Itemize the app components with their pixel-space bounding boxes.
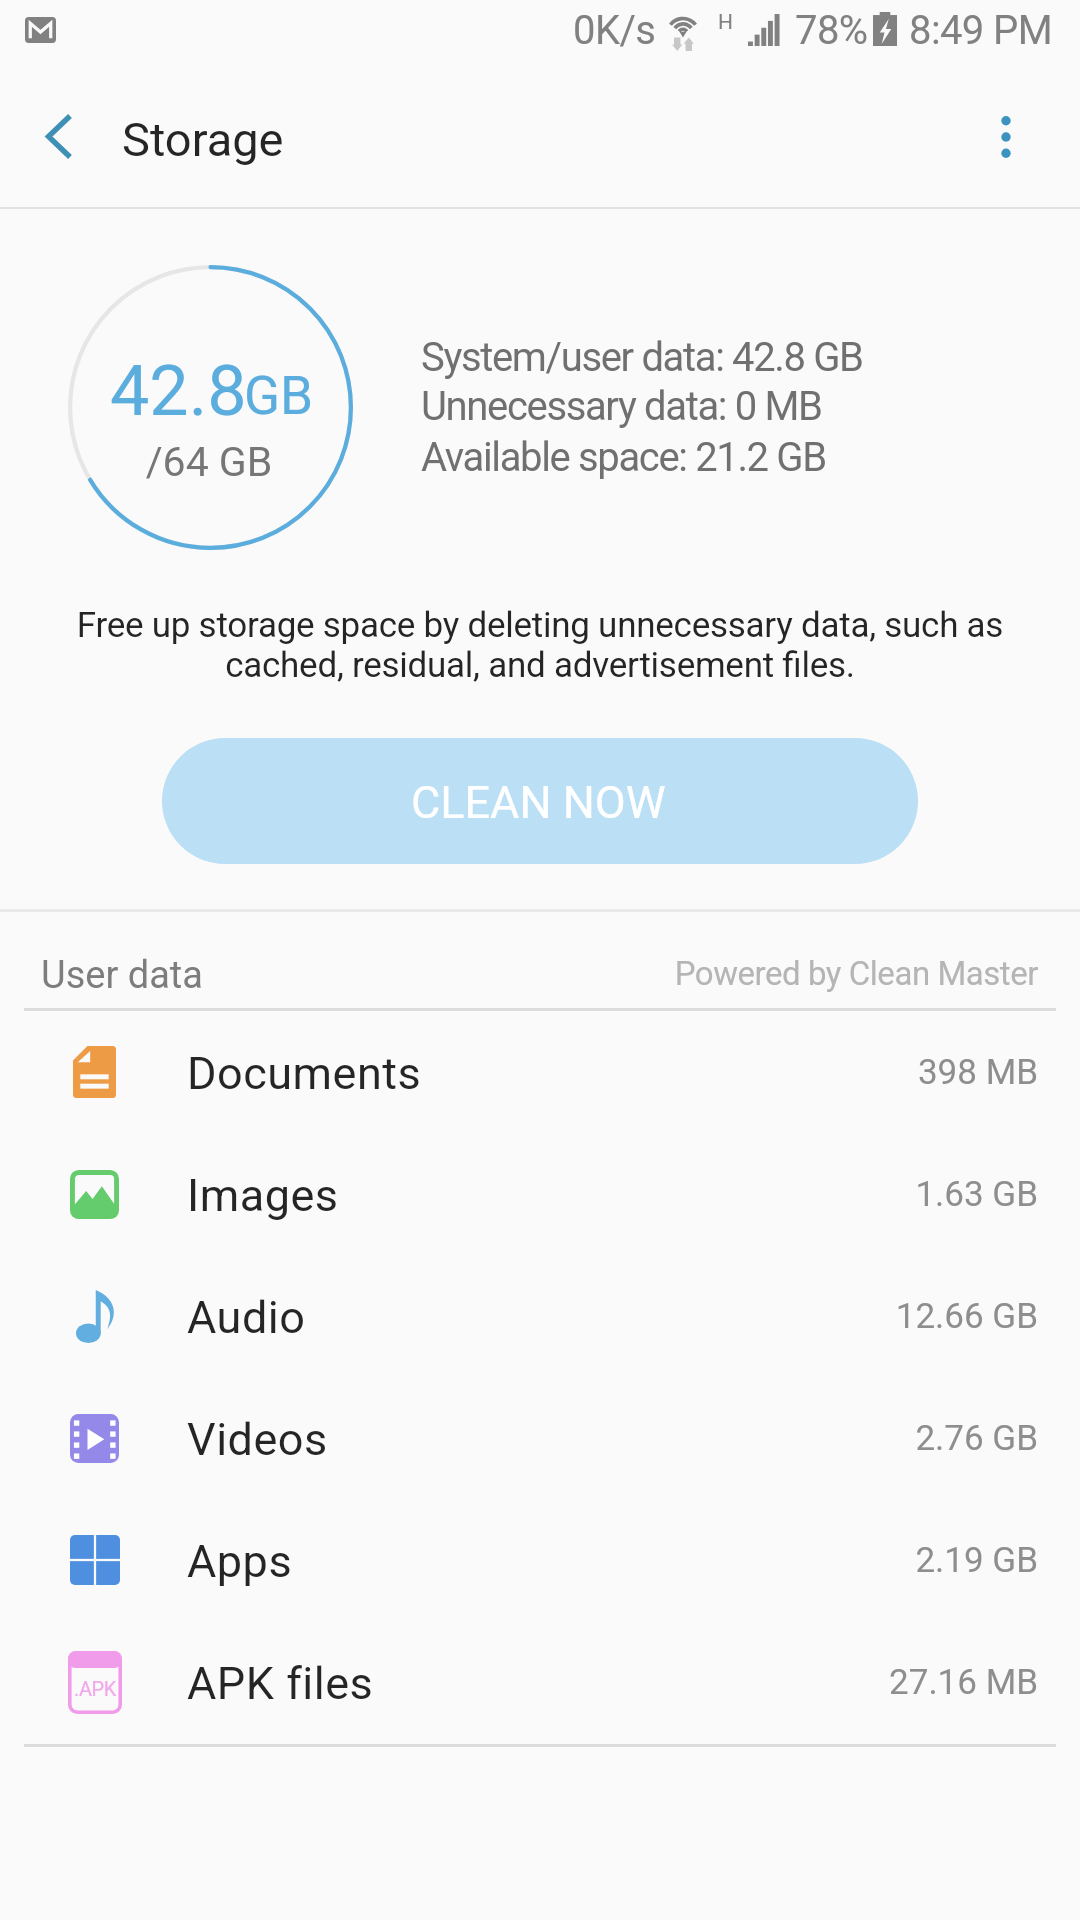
staticText: System/user data: 42.8 GB [421, 334, 863, 381]
staticText: H [718, 10, 733, 35]
staticText: 398 MB [438, 1052, 1038, 1093]
button[interactable]: Audio [0, 1255, 1080, 1377]
staticText: GB [244, 365, 314, 427]
staticText: .APK [68, 1677, 122, 1700]
button[interactable]: Documents [0, 1011, 1080, 1133]
staticText: Available space: 21.2 GB [421, 434, 826, 481]
button[interactable]: More options [958, 91, 1054, 187]
staticText: 27.16 MB [438, 1662, 1038, 1703]
staticText: cached, residual, and advertisement file… [40, 645, 1040, 686]
staticText: Documents [187, 1047, 422, 1100]
staticText: APK files [187, 1657, 374, 1710]
button[interactable]: .APK [0, 1621, 1080, 1743]
button[interactable]: Apps [0, 1499, 1080, 1621]
staticText: 1.63 GB [438, 1174, 1038, 1215]
staticText: 12.66 GB [438, 1296, 1038, 1337]
staticText: 0K/s [573, 7, 656, 54]
staticText: Videos [187, 1413, 328, 1466]
staticText: /64 GB [67, 438, 351, 486]
staticText: Audio [187, 1291, 306, 1344]
staticText: 2.19 GB [438, 1540, 1038, 1581]
staticText: Unnecessary data: 0 MB [421, 383, 822, 430]
staticText: CLEAN NOW [411, 776, 666, 829]
staticText: Images [187, 1169, 339, 1222]
staticText: 42.8 [110, 350, 247, 432]
staticText: 8:49 PM [909, 7, 1053, 54]
staticText: Free up storage space by deleting unnece… [40, 605, 1040, 646]
staticText: 2.76 GB [438, 1418, 1038, 1459]
button[interactable]: Navigate up [11, 91, 107, 187]
staticText: Storage [122, 112, 284, 167]
staticText: Powered by Clean Master [438, 954, 1038, 993]
staticText: 78% [795, 7, 868, 54]
button[interactable]: Videos [0, 1377, 1080, 1499]
button[interactable]: Images [0, 1133, 1080, 1255]
staticText: Apps [187, 1535, 293, 1588]
button[interactable]: CLEAN NOW [162, 738, 918, 864]
staticText: User data [41, 953, 203, 998]
